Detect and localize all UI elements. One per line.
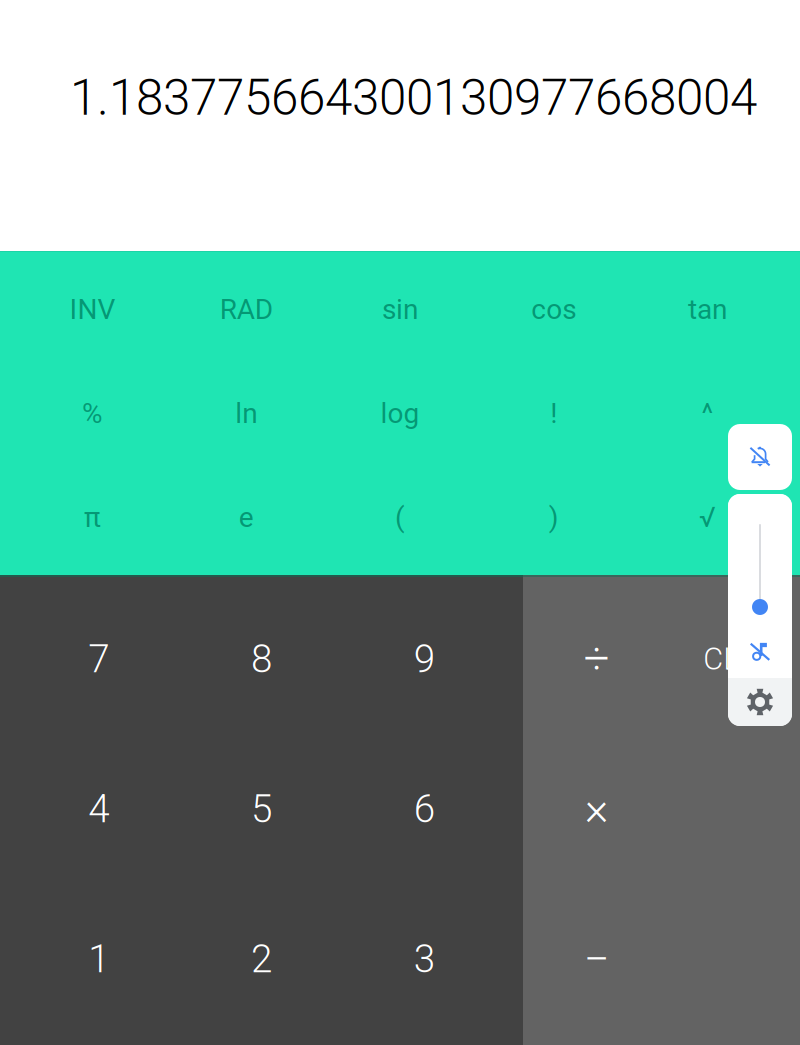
staticText: RAD (220, 293, 273, 326)
button[interactable]: Silence ringer (728, 424, 792, 490)
staticText: × (585, 782, 609, 835)
button[interactable]: log (323, 357, 477, 461)
button[interactable]: − (532, 878, 661, 1028)
staticText: 2 (251, 936, 272, 982)
staticText: % (82, 397, 103, 430)
button[interactable]: 2 (180, 878, 343, 1028)
staticText: π (84, 501, 101, 534)
staticText: ÷ (584, 632, 610, 685)
staticText: tan (688, 293, 727, 326)
staticText: 1.183775664300130977668004 (70, 69, 757, 127)
staticText: ( (395, 501, 405, 534)
button[interactable]: ( (323, 461, 477, 565)
staticText: ) (549, 501, 559, 534)
button[interactable]: RAD (169, 253, 323, 357)
staticText: ln (235, 397, 257, 430)
staticText: log (380, 397, 419, 430)
button[interactable]: e (169, 461, 323, 565)
button[interactable]: 8 (180, 578, 343, 728)
staticText: 7 (88, 636, 109, 682)
staticText: 4 (88, 786, 109, 832)
staticText: 9 (414, 636, 435, 682)
staticText: CLR (703, 641, 758, 677)
button[interactable]: 5 (180, 728, 343, 878)
button[interactable]: 6 (343, 728, 505, 878)
button[interactable]: 4 (17, 728, 180, 878)
button[interactable]: 9 (343, 578, 505, 728)
staticText: 6 (414, 786, 435, 832)
button[interactable]: ÷ (532, 578, 661, 728)
button[interactable]: × (532, 728, 661, 878)
staticText: ^ (702, 397, 714, 430)
button[interactable]: CLR (661, 578, 800, 728)
button[interactable]: Sound settings (728, 678, 792, 726)
staticText: 1 (88, 936, 109, 982)
button[interactable]: sin (323, 253, 477, 357)
button[interactable]: π (15, 461, 169, 565)
button[interactable]: 7 (17, 578, 180, 728)
button[interactable]: % (15, 357, 169, 461)
staticText: − (584, 932, 610, 985)
button[interactable]: ! (477, 357, 631, 461)
staticText: INV (69, 293, 115, 326)
button[interactable]: ^ (631, 357, 784, 461)
button[interactable]: INV (15, 253, 169, 357)
staticText: e (239, 501, 254, 534)
button[interactable]: √ (631, 461, 784, 565)
button[interactable]: ) (477, 461, 631, 565)
staticText: ! (550, 397, 557, 430)
button[interactable]: Mute media (728, 624, 792, 678)
staticText: 5 (251, 786, 272, 832)
button[interactable]: tan (631, 253, 784, 357)
staticText: 8 (251, 636, 272, 682)
staticText: sin (382, 293, 418, 326)
button[interactable]: ln (169, 357, 323, 461)
staticText: cos (531, 293, 576, 326)
staticText: √ (699, 501, 716, 534)
button[interactable]: cos (477, 253, 631, 357)
button[interactable]: 3 (343, 878, 505, 1028)
staticText: 3 (414, 936, 435, 982)
button[interactable]: 1 (17, 878, 180, 1028)
